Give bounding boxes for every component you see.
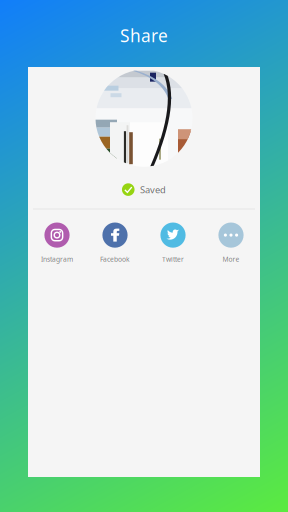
staticText: Saved [140,183,166,196]
staticText: Instagram [41,255,73,263]
button[interactable]: Facebook [86,222,144,263]
staticText: More [222,255,239,263]
button[interactable]: More [202,222,260,263]
button[interactable]: Twitter [144,222,202,263]
button[interactable]: Instagram [28,222,86,263]
staticText: Share [120,24,168,47]
staticText: Facebook [100,255,130,263]
staticText: Twitter [162,255,184,263]
